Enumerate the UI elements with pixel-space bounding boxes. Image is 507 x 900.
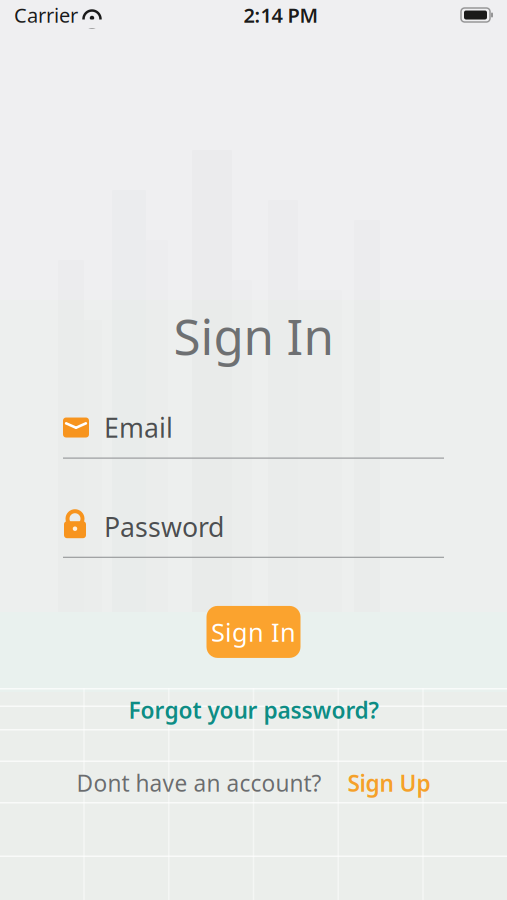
staticText: 2:14 PM xyxy=(243,2,318,28)
button[interactable]: Forgot your password? xyxy=(128,695,378,725)
staticText: Password xyxy=(104,509,224,544)
button[interactable]: Sign Up xyxy=(347,768,430,798)
staticText: Sign Up xyxy=(347,768,430,798)
staticText: Carrier xyxy=(14,2,78,28)
button[interactable]: Sign In xyxy=(206,606,300,658)
staticText: Sign In xyxy=(173,303,333,368)
staticText: Email xyxy=(104,410,173,445)
staticText: Sign In xyxy=(211,615,296,649)
button[interactable]: Password xyxy=(63,510,444,558)
staticText: Forgot your password? xyxy=(128,695,378,725)
button[interactable]: Email xyxy=(63,410,444,459)
staticText: Dont have an account? xyxy=(76,768,321,798)
